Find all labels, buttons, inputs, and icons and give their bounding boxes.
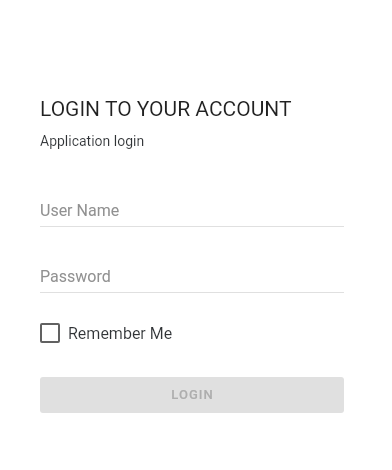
button[interactable]: Password bbox=[40, 267, 344, 293]
button[interactable]: User Name bbox=[40, 201, 344, 227]
other: Remember Me checkbox bbox=[40, 323, 60, 343]
staticText: LOGIN bbox=[171, 387, 214, 402]
staticText: Remember Me bbox=[68, 324, 173, 343]
staticText: Password bbox=[40, 267, 111, 286]
button[interactable]: LOGIN bbox=[40, 377, 344, 413]
staticText: Application login bbox=[40, 133, 145, 149]
button[interactable]: Remember Me checkbox bbox=[40, 323, 173, 343]
staticText: LOGIN TO YOUR ACCOUNT bbox=[40, 97, 292, 122]
staticText: User Name bbox=[40, 201, 120, 220]
